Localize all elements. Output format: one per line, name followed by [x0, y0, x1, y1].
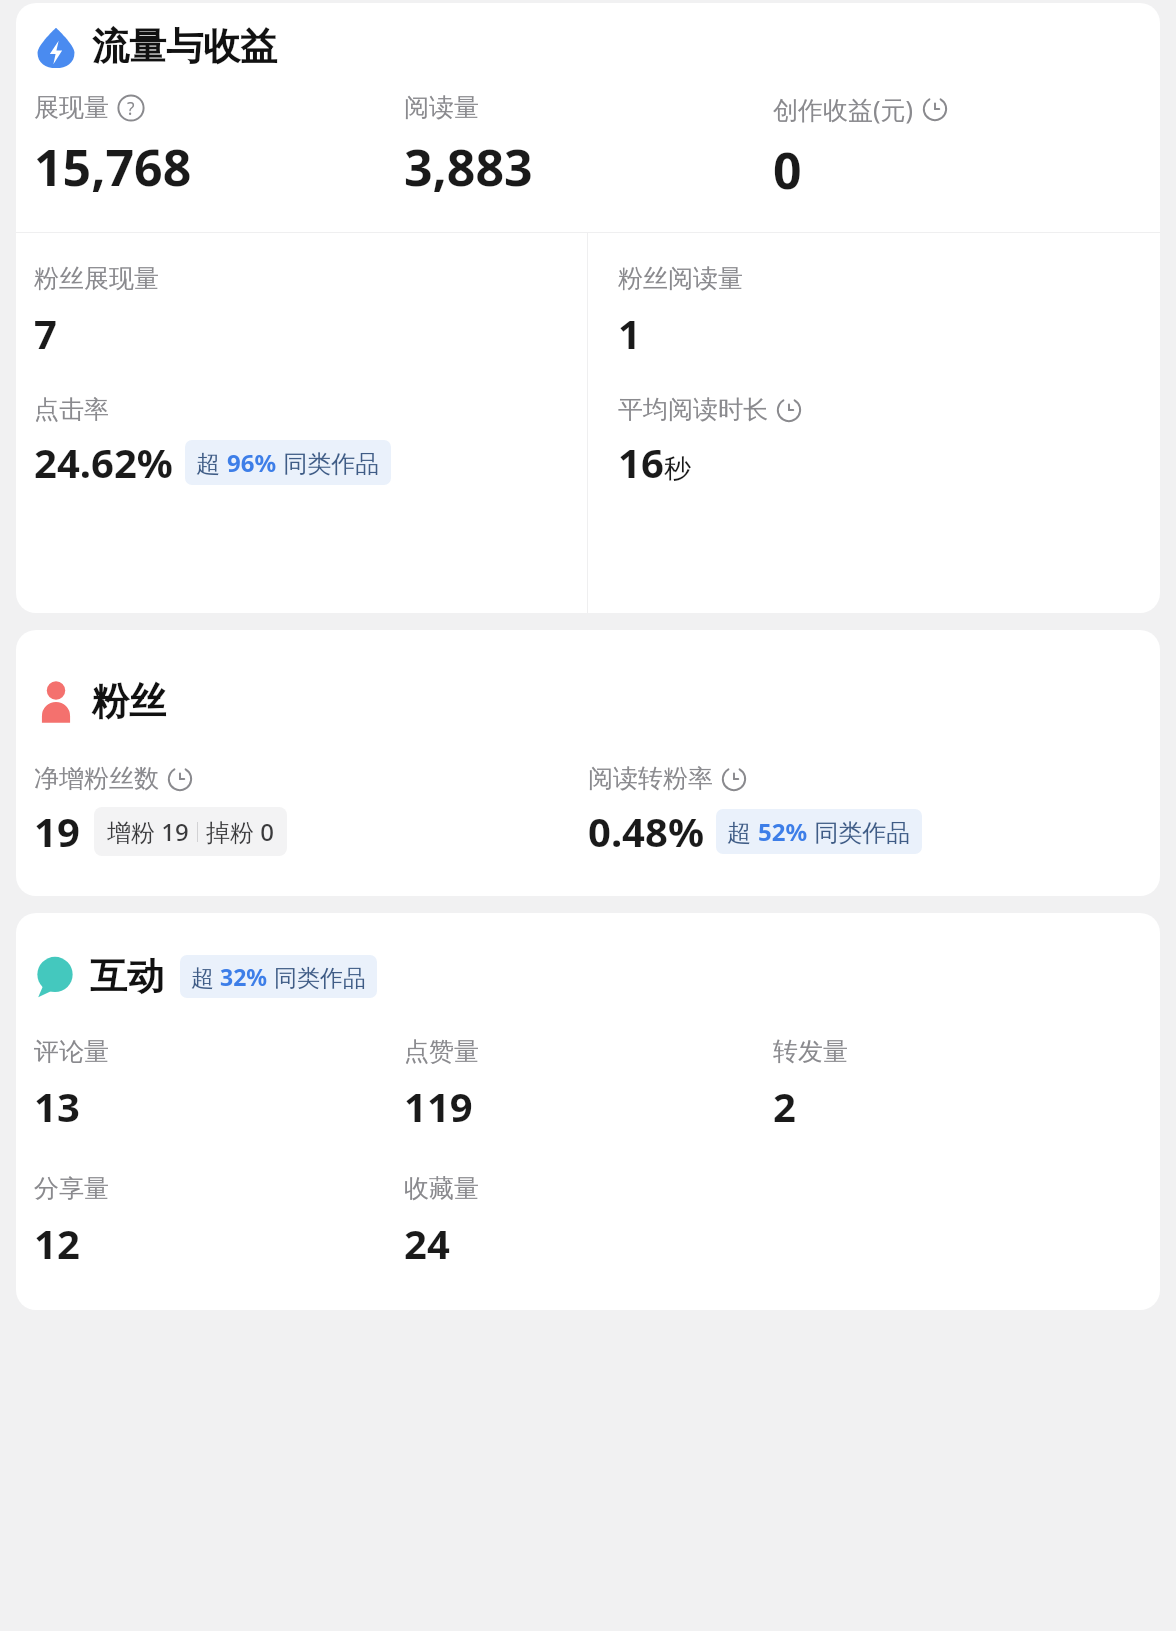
staticText: 超 — [727, 815, 758, 848]
other: 更新时间 — [167, 766, 193, 792]
button[interactable]: 净增粉丝数 — [34, 763, 588, 858]
staticText: 32% — [220, 961, 268, 992]
staticText: 超 — [196, 446, 227, 479]
staticText: 粉丝展现量 — [34, 263, 159, 294]
button[interactable]: 收藏量 — [404, 1173, 773, 1270]
staticText: 点赞量 — [404, 1036, 479, 1067]
staticText: 24.62% — [34, 435, 173, 489]
staticText: 流量与收益 — [92, 23, 277, 70]
staticText: 阅读量 — [404, 92, 479, 123]
staticText: 12 — [34, 1216, 80, 1270]
staticText: 平均阅读时长 — [618, 394, 768, 425]
staticText: 24 — [404, 1216, 450, 1270]
button[interactable]: 分享量 — [34, 1173, 404, 1270]
other: 更新时间 — [721, 766, 747, 792]
button[interactable]: 粉丝展现量 — [16, 233, 587, 519]
button[interactable]: 转发量 — [773, 1036, 1142, 1133]
staticText: 2 — [773, 1079, 796, 1133]
button[interactable]: 展现量 — [34, 92, 404, 201]
other: 更新时间 — [922, 96, 948, 122]
staticText: 点击率 — [34, 394, 109, 425]
staticText: 互动 — [90, 953, 164, 1000]
staticText: 转发量 — [773, 1036, 848, 1067]
staticText: 119 — [404, 1079, 473, 1133]
button[interactable]: 评论量 — [34, 1036, 404, 1133]
button[interactable]: 创作收益(元) — [773, 92, 1142, 204]
staticText: 粉丝 — [92, 678, 166, 725]
button[interactable]: 超 — [180, 955, 377, 998]
staticText: 评论量 — [34, 1036, 109, 1067]
staticText: 超 — [191, 961, 220, 992]
staticText: 0.48% — [588, 804, 704, 858]
staticText: 3,883 — [404, 133, 533, 201]
staticText: 同类作品 — [808, 815, 911, 848]
other: 更新时间 — [776, 397, 802, 423]
button[interactable]: 阅读转粉率 — [588, 763, 1142, 858]
button[interactable]: 增粉 19 — [94, 807, 287, 856]
staticText: 净增粉丝数 — [34, 763, 159, 794]
staticText: 同类作品 — [277, 446, 380, 479]
button[interactable]: 点赞量 — [404, 1036, 773, 1133]
staticText: 19 — [34, 804, 80, 858]
button[interactable]: 粉丝阅读量 — [588, 233, 1160, 519]
button[interactable]: 展现量说明 — [117, 94, 145, 122]
staticText: ? — [127, 96, 135, 120]
staticText: 15,768 — [34, 133, 192, 201]
staticText: 增粉 19 — [107, 815, 189, 848]
staticText: 掉粉 0 — [206, 815, 274, 848]
staticText: 秒 — [664, 452, 691, 486]
staticText: 13 — [34, 1079, 80, 1133]
button[interactable]: 阅读量 — [404, 92, 773, 201]
staticText: 粉丝阅读量 — [618, 263, 743, 294]
staticText: 0 — [773, 136, 802, 204]
staticText: 分享量 — [34, 1173, 109, 1204]
staticText: 7 — [34, 306, 57, 360]
staticText: 展现量 — [34, 92, 109, 123]
staticText: 96% — [227, 446, 277, 479]
staticText: 16 — [618, 435, 664, 489]
staticText: 同类作品 — [268, 961, 366, 992]
staticText: 收藏量 — [404, 1173, 479, 1204]
staticText: 1 — [618, 306, 641, 360]
staticText: 52% — [758, 815, 808, 848]
button[interactable]: 超 — [185, 440, 391, 485]
staticText: 创作收益(元) — [773, 92, 914, 126]
button[interactable]: 超 — [716, 809, 922, 854]
staticText: 阅读转粉率 — [588, 763, 713, 794]
